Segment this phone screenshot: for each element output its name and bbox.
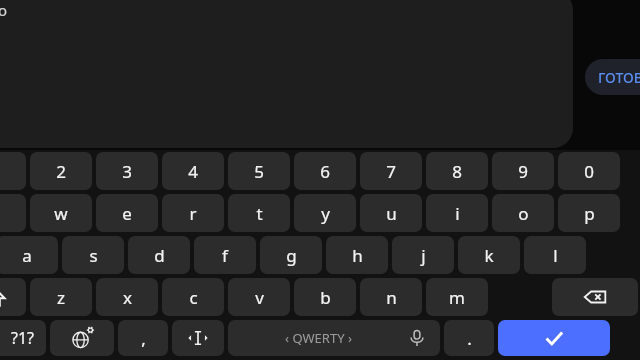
button[interactable]: j	[392, 236, 454, 274]
button[interactable]: 8	[426, 152, 488, 190]
staticText: p	[584, 202, 595, 225]
staticText: b	[320, 286, 331, 309]
staticText: l	[553, 244, 558, 267]
staticText: e	[122, 202, 132, 225]
staticText: d	[154, 244, 165, 267]
button[interactable]: n	[360, 278, 422, 316]
staticText: x	[123, 286, 132, 309]
button[interactable]: 1	[0, 152, 26, 190]
button[interactable]: 6	[294, 152, 356, 190]
staticText: 6	[320, 160, 330, 183]
button[interactable]: 9	[492, 152, 554, 190]
button[interactable]: c	[162, 278, 224, 316]
staticText: s	[89, 244, 98, 267]
staticText: v	[255, 286, 264, 309]
staticText: a	[22, 244, 32, 267]
button[interactable]: ,	[118, 320, 168, 356]
staticText: y	[321, 202, 330, 225]
button[interactable]: l	[524, 236, 586, 274]
button[interactable]: r	[162, 194, 224, 232]
button[interactable]: p	[558, 194, 620, 232]
staticText: m	[449, 286, 465, 309]
button[interactable]: w	[30, 194, 92, 232]
button[interactable]: 2	[30, 152, 92, 190]
staticText: 2	[56, 160, 66, 183]
staticText: ‹ QWERTY ›	[285, 329, 352, 347]
button[interactable]: 7	[360, 152, 422, 190]
button[interactable]: Enter	[498, 320, 610, 356]
button[interactable]: y	[294, 194, 356, 232]
staticText: 7	[386, 160, 396, 183]
button[interactable]: v	[228, 278, 290, 316]
staticText: .	[467, 327, 472, 350]
button[interactable]: ?1?	[0, 320, 46, 356]
button[interactable]: 3	[96, 152, 158, 190]
staticText: h	[352, 244, 363, 267]
staticText: o	[518, 202, 529, 225]
staticText: u	[386, 202, 397, 225]
staticText: t	[256, 202, 263, 225]
button[interactable]: Space	[228, 320, 440, 356]
button[interactable]: e	[96, 194, 158, 232]
staticText: f	[222, 244, 228, 267]
staticText: r	[189, 202, 197, 225]
button[interactable]: o	[492, 194, 554, 232]
button[interactable]: 4	[162, 152, 224, 190]
staticText: j	[421, 244, 426, 267]
button[interactable]: Backspace	[552, 278, 638, 316]
button[interactable]: d	[128, 236, 190, 274]
staticText: w	[54, 202, 68, 225]
staticText: g	[286, 244, 297, 267]
button[interactable]: b	[294, 278, 356, 316]
staticText: c	[189, 286, 198, 309]
staticText: o	[0, 0, 8, 20]
button[interactable]: Move cursor	[172, 320, 224, 356]
button[interactable]: 5	[228, 152, 290, 190]
button[interactable]: k	[458, 236, 520, 274]
button[interactable]: t	[228, 194, 290, 232]
staticText: 9	[518, 160, 528, 183]
button[interactable]: Shift	[0, 278, 26, 316]
staticText: 3	[122, 160, 132, 183]
button[interactable]: i	[426, 194, 488, 232]
button[interactable]: q	[0, 194, 26, 232]
button[interactable]: ГОТОВО	[585, 59, 640, 95]
staticText: ГОТОВО	[598, 68, 640, 87]
staticText: 4	[188, 160, 198, 183]
button[interactable]: x	[96, 278, 158, 316]
button[interactable]: 0	[558, 152, 620, 190]
button[interactable]: u	[360, 194, 422, 232]
staticText: ,	[141, 327, 146, 350]
staticText: ?1?	[11, 327, 35, 349]
staticText: n	[386, 286, 397, 309]
button[interactable]: s	[62, 236, 124, 274]
button[interactable]: .	[444, 320, 494, 356]
staticText: 0	[584, 160, 594, 183]
staticText: 8	[452, 160, 462, 183]
staticText: i	[455, 202, 460, 225]
button[interactable]: z	[30, 278, 92, 316]
button[interactable]: f	[194, 236, 256, 274]
button[interactable]: m	[426, 278, 488, 316]
button[interactable]: Change keyboard language	[50, 320, 114, 356]
staticText: 5	[254, 160, 264, 183]
staticText: k	[484, 244, 494, 267]
staticText: z	[57, 286, 65, 309]
button[interactable]: a	[0, 236, 58, 274]
button[interactable]: g	[260, 236, 322, 274]
button[interactable]: h	[326, 236, 388, 274]
